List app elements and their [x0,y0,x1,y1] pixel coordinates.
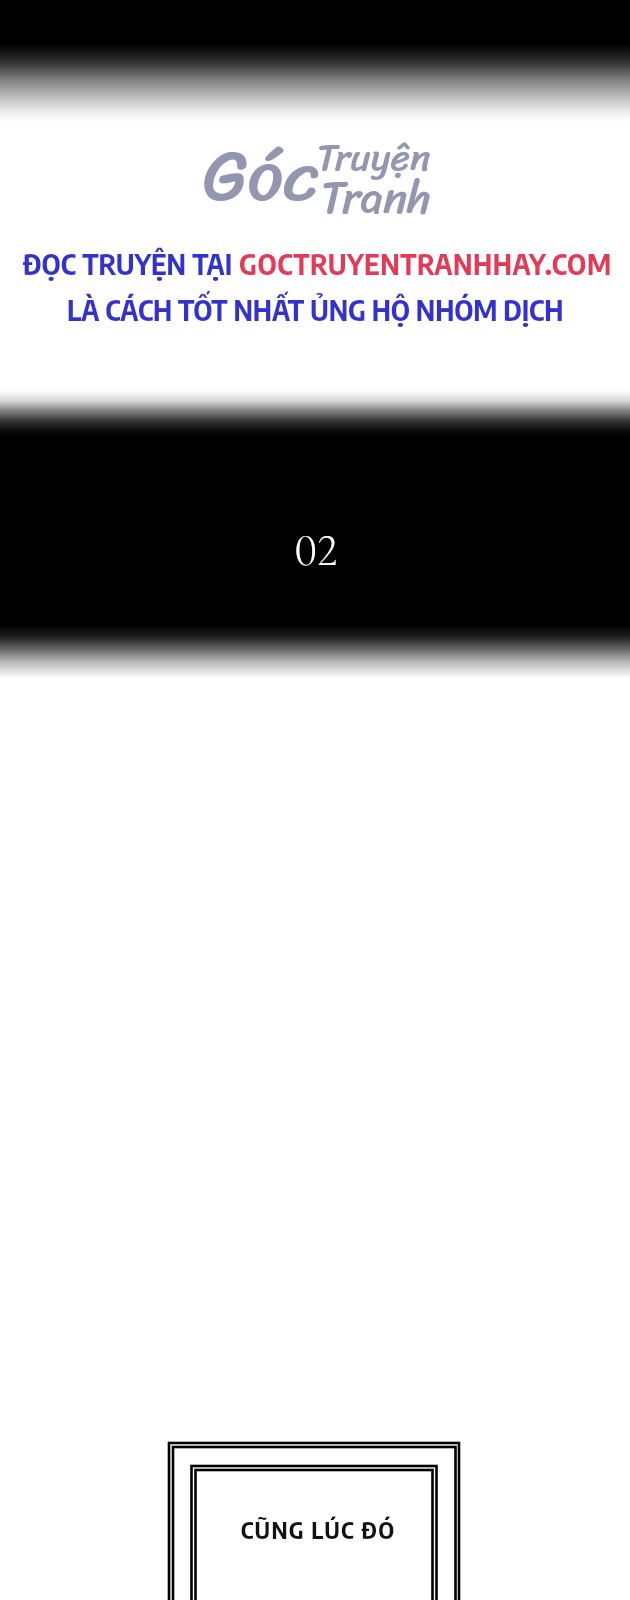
staticText: Góc [203,113,319,239]
staticText: ĐỌC TRUYỆN TẠI [23,245,239,281]
staticText: Truyện [317,124,431,191]
button[interactable]: Góc [0,0,630,1600]
staticText: Tranh [321,158,431,238]
staticText: CŨNG LÚC ĐÓ [3,1514,630,1544]
staticText: LÀ CÁCH TỐT NHẤT ỦNG HỘ NHÓM DỊCH [67,291,564,327]
staticText: GOCTRUYENTRANHHAY.COM [239,245,612,281]
staticText: 02 [1,522,630,578]
